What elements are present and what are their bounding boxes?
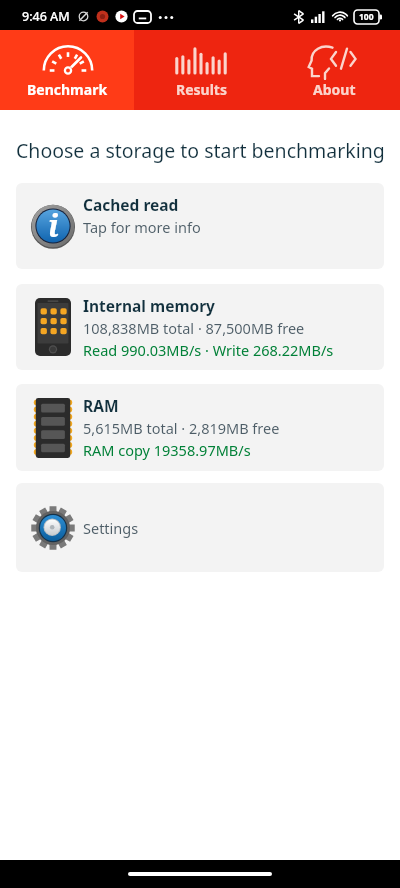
staticText: Read 990.03MB/s · Write 268.22MB/s [83,340,334,360]
staticText: About [313,80,356,99]
button[interactable]: Results [134,30,267,110]
button[interactable]: Internal memory [16,284,384,370]
button[interactable]: RAM [16,384,384,471]
staticText: 5,615MB total · 2,819MB free [83,418,280,438]
staticText: Choose a storage to start benchmarking [16,137,385,164]
staticText: 100 [359,11,374,23]
staticText: i [48,205,59,246]
staticText: Results [176,80,227,99]
button[interactable]: Benchmark [0,30,134,110]
other: Home gesture bar [0,860,400,888]
button[interactable]: i [16,183,384,269]
staticText: Internal memory [83,295,215,316]
staticText: Tap for more info [83,217,201,237]
staticText: RAM copy 19358.97MB/s [83,440,251,460]
staticText: RAM [83,395,119,416]
staticText: Benchmark [27,80,108,99]
staticText: 9:46 AM [22,8,70,25]
button[interactable]: About [267,30,400,110]
staticText: Cached read [83,194,179,215]
button[interactable]: Settings [16,483,384,572]
staticText: Settings [83,518,139,538]
staticText: 108,838MB total · 87,500MB free [83,318,305,338]
